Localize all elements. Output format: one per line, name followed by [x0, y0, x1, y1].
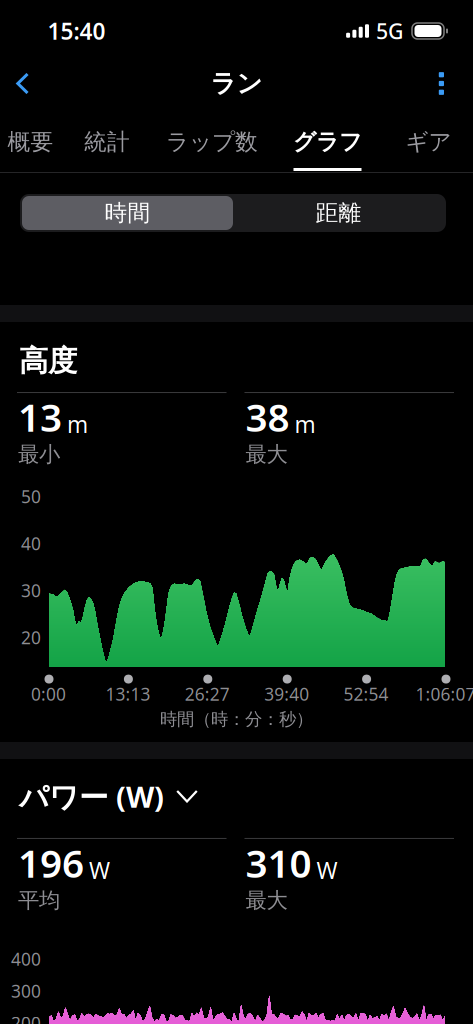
- button[interactable]: ラップ数: [153, 110, 271, 172]
- staticText: 1:06:07: [415, 683, 473, 706]
- staticText: 13: [18, 391, 62, 442]
- staticText: 0:00: [31, 683, 66, 706]
- button[interactable]: 概要: [0, 110, 61, 172]
- staticText: 距離: [315, 199, 361, 227]
- staticText: 310: [245, 837, 311, 888]
- staticText: 最大: [245, 887, 287, 913]
- staticText: 40: [21, 532, 41, 555]
- button[interactable]: 時間: [22, 196, 233, 230]
- staticText: グラフ: [293, 128, 362, 156]
- button[interactable]: 統計: [61, 110, 153, 172]
- staticText: 50: [21, 485, 41, 508]
- staticText: 13:13: [105, 683, 150, 706]
- staticText: 時間: [104, 199, 150, 227]
- staticText: 概要: [7, 128, 53, 156]
- staticText: 統計: [84, 128, 130, 156]
- staticText: 200: [11, 1011, 41, 1024]
- staticText: 最小: [18, 441, 60, 468]
- staticText: 400: [11, 948, 41, 971]
- staticText: W: [316, 855, 337, 885]
- staticText: 196: [18, 837, 84, 888]
- staticText: 5G: [376, 17, 404, 45]
- button[interactable]: パワー (W): [0, 759, 473, 816]
- staticText: ラップ数: [166, 128, 258, 156]
- staticText: 最大: [245, 441, 287, 468]
- staticText: m: [67, 409, 88, 439]
- staticText: 300: [11, 980, 41, 1003]
- staticText: 39:40: [264, 683, 309, 706]
- staticText: 30: [21, 579, 41, 602]
- staticText: ギア: [405, 128, 451, 156]
- staticText: W: [89, 855, 110, 885]
- staticText: ラン: [210, 68, 262, 99]
- button[interactable]: Back: [0, 58, 45, 108]
- staticText: 平均: [18, 887, 60, 913]
- staticText: パワー (W): [19, 777, 164, 816]
- staticText: 52:54: [344, 683, 389, 706]
- button[interactable]: More options: [421, 59, 473, 108]
- staticText: 15:40: [47, 16, 105, 46]
- staticText: 20: [21, 626, 41, 649]
- button[interactable]: グラフ: [271, 110, 384, 172]
- staticText: 26:27: [185, 683, 230, 706]
- staticText: m: [294, 409, 315, 439]
- staticText: 時間（時：分：秒）: [160, 709, 313, 730]
- button[interactable]: 距離: [233, 196, 444, 230]
- staticText: 38: [245, 391, 289, 442]
- button[interactable]: ギア: [384, 110, 473, 172]
- staticText: 高度: [19, 343, 77, 379]
